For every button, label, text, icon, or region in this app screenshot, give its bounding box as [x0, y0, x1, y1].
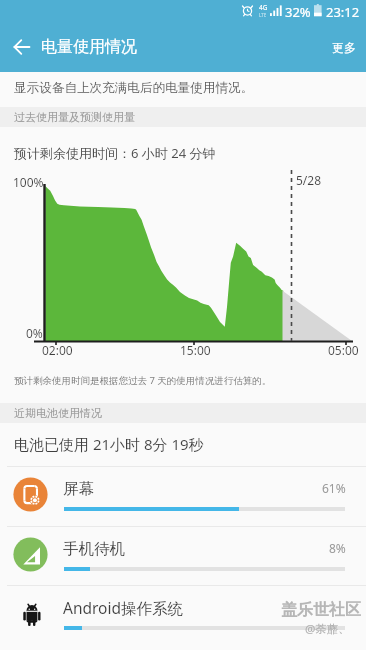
- staticText: 23:12: [326, 3, 360, 21]
- staticText: 盖乐世社区: [281, 600, 361, 620]
- staticText: 32%: [285, 3, 311, 21]
- button[interactable]: Back: [6, 31, 38, 63]
- staticText: 0%: [26, 325, 43, 341]
- button[interactable]: Android操作系统: [0, 585, 366, 650]
- staticText: 更多: [332, 40, 356, 55]
- staticText: 近期电池使用情况: [14, 406, 102, 420]
- staticText: 4G: [259, 3, 268, 12]
- staticText: 电池已使用 21小时 8分 19秒: [14, 434, 204, 454]
- staticText: 05:00: [328, 342, 359, 358]
- staticText: 过去使用量及预测使用量: [14, 110, 135, 124]
- staticText: 8%: [329, 540, 346, 556]
- staticText: 预计剩余使用时间：6 小时 24 分钟: [14, 144, 216, 162]
- staticText: 屏幕: [63, 479, 94, 499]
- button[interactable]: 更多: [322, 30, 366, 64]
- staticText: Android操作系统: [63, 597, 184, 618]
- staticText: LTE: [259, 12, 267, 18]
- staticText: @荼蘼、: [305, 621, 350, 637]
- staticText: 电量使用情况: [41, 37, 137, 57]
- staticText: 手机待机: [63, 539, 125, 559]
- staticText: 显示设备自上次充满电后的电量使用情况。: [14, 80, 254, 96]
- staticText: 02:00: [42, 342, 73, 358]
- staticText: 预计剩余使用时间是根据您过去 7 天的使用情况进行估算的。: [14, 374, 272, 387]
- staticText: 15:00: [180, 342, 211, 358]
- button[interactable]: 屏幕: [0, 466, 366, 525]
- staticText: 100%: [13, 174, 44, 190]
- staticText: 5/28: [296, 172, 322, 188]
- button[interactable]: 手机待机: [0, 526, 366, 585]
- staticText: 61%: [322, 480, 346, 496]
